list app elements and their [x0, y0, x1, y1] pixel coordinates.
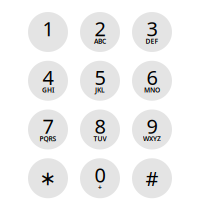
button[interactable]: 7 PQRS [28, 109, 68, 149]
button[interactable]: 5 JKL [80, 61, 120, 101]
button[interactable]: Pound [132, 158, 172, 198]
staticText: JKL [95, 86, 105, 94]
staticText: 2 [94, 15, 105, 42]
staticText: TUV [93, 134, 106, 143]
staticText: ∗ [39, 167, 56, 190]
staticText: PQRS [39, 134, 56, 143]
staticText: 9 [146, 113, 157, 139]
staticText: 7 [42, 113, 53, 139]
staticText: ABC [94, 37, 106, 46]
staticText: 4 [42, 64, 53, 91]
button[interactable]: 3 DEF [132, 12, 172, 52]
button[interactable]: 4 GHI [28, 61, 68, 101]
staticText: + [98, 183, 102, 192]
staticText: GHI [42, 86, 54, 94]
staticText: # [145, 165, 158, 192]
button[interactable]: Star [28, 158, 68, 198]
button[interactable]: 9 WXYZ [132, 109, 172, 149]
staticText: 5 [94, 64, 105, 91]
staticText: 0 [94, 161, 105, 188]
staticText: 1 [42, 15, 53, 42]
button[interactable]: 6 MNO [132, 61, 172, 101]
staticText: 6 [146, 64, 157, 91]
staticText: 3 [146, 15, 157, 42]
button[interactable]: 0 + [80, 158, 120, 198]
staticText: DEF [145, 37, 158, 46]
staticText: WXYZ [143, 134, 161, 143]
button[interactable]: 8 TUV [80, 109, 120, 149]
staticText: MNO [144, 86, 160, 94]
staticText: 8 [94, 113, 105, 139]
button[interactable]: 2 ABC [80, 12, 120, 52]
button[interactable]: 1 [28, 12, 68, 52]
